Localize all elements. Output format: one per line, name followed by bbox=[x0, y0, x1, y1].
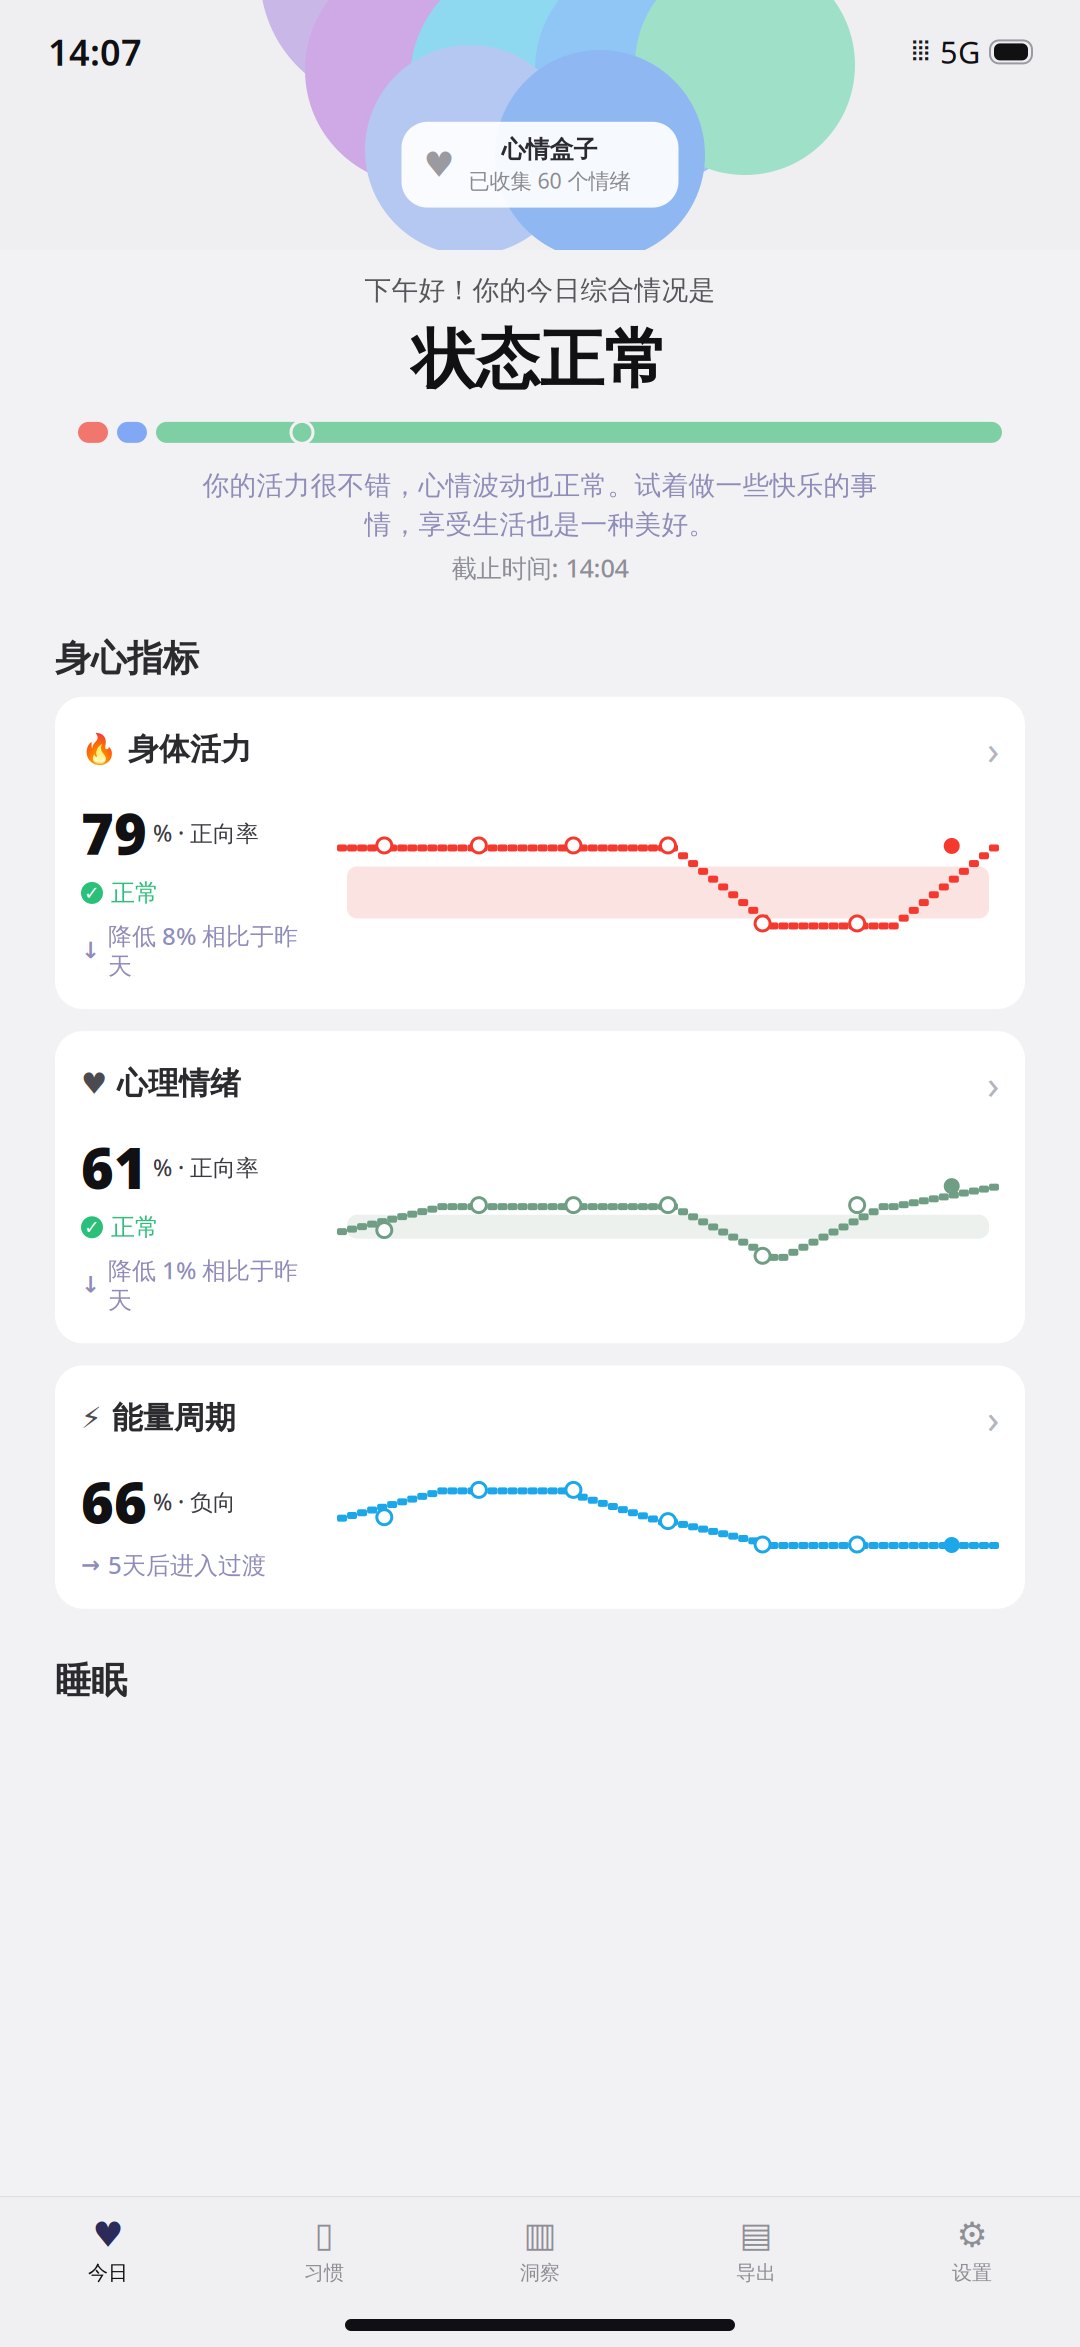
staticText: 5G bbox=[940, 31, 980, 72]
staticText: 79 bbox=[81, 796, 147, 870]
staticText: › bbox=[987, 1057, 999, 1110]
staticText: % · 负向 bbox=[153, 1487, 236, 1517]
staticText: 61 bbox=[81, 1130, 147, 1205]
staticText: ✓ bbox=[84, 882, 100, 904]
staticText: 身心指标 bbox=[55, 636, 199, 681]
button[interactable]: ♥ bbox=[401, 122, 678, 208]
staticText: 5天后进入过渡 bbox=[108, 1549, 266, 1581]
staticText: ⦙⦙⦙ bbox=[912, 40, 930, 64]
staticText: 正常 bbox=[111, 878, 159, 908]
staticText: 今日 bbox=[88, 2260, 128, 2285]
staticText: ✓ bbox=[84, 1217, 100, 1238]
staticText: › bbox=[987, 1391, 999, 1444]
staticText: 🔥 bbox=[81, 732, 118, 766]
staticText: 降低 8% 相比于昨天 bbox=[108, 920, 298, 981]
button[interactable]: ♥ bbox=[0, 2207, 216, 2293]
staticText: 你的活力很不错，心情波动也正常。试着做一些快乐的事 bbox=[202, 469, 877, 502]
staticText: ⚡︎ bbox=[81, 1401, 102, 1435]
staticText: ⚙ bbox=[956, 2215, 987, 2254]
button[interactable]: ▥ bbox=[432, 2207, 648, 2293]
staticText: ♥ bbox=[81, 1067, 107, 1100]
staticText: ▯ bbox=[314, 2215, 333, 2254]
staticText: 66 bbox=[81, 1464, 147, 1539]
staticText: → bbox=[81, 1552, 100, 1578]
button[interactable]: ▯ bbox=[216, 2207, 432, 2293]
staticText: 14:07 bbox=[48, 28, 142, 76]
staticText: 能量周期 bbox=[112, 1399, 236, 1437]
button[interactable]: ♥ bbox=[55, 1031, 1025, 1343]
staticText: ▥ bbox=[523, 2215, 556, 2254]
staticText: 心情盒子 bbox=[501, 135, 597, 164]
staticText: 下午好！你的今日综合情况是 bbox=[364, 274, 715, 307]
button[interactable]: ⚡︎ bbox=[55, 1365, 1025, 1609]
staticText: ↓ bbox=[81, 937, 100, 963]
button[interactable]: ⚙ bbox=[864, 2207, 1080, 2293]
button[interactable]: 🔥 bbox=[55, 697, 1025, 1009]
staticText: 已收集 60 个情绪 bbox=[468, 166, 630, 195]
staticText: 睡眠 bbox=[55, 1659, 127, 1703]
staticText: % · 正向率 bbox=[153, 1152, 259, 1182]
staticText: 正常 bbox=[111, 1212, 159, 1242]
staticText: › bbox=[987, 723, 999, 776]
staticText: ▤ bbox=[739, 2215, 772, 2254]
staticText: 习惯 bbox=[304, 2260, 344, 2285]
staticText: 状态正常 bbox=[412, 321, 668, 399]
button[interactable]: ▤ bbox=[648, 2207, 864, 2293]
staticText: 洞察 bbox=[520, 2260, 560, 2285]
staticText: ♥ bbox=[423, 145, 454, 184]
staticText: 截止时间: 14:04 bbox=[451, 551, 628, 584]
staticText: 设置 bbox=[952, 2260, 992, 2285]
staticText: 身体活力 bbox=[128, 730, 252, 768]
staticText: ↓ bbox=[81, 1272, 100, 1297]
staticText: 降低 1% 相比于昨天 bbox=[108, 1254, 298, 1315]
staticText: ♥ bbox=[92, 2215, 123, 2254]
staticText: 心理情绪 bbox=[117, 1065, 241, 1102]
staticText: 导出 bbox=[736, 2260, 776, 2285]
staticText: % · 正向率 bbox=[153, 818, 259, 848]
staticText: 情，享受生活也是一种美好。 bbox=[364, 508, 715, 541]
